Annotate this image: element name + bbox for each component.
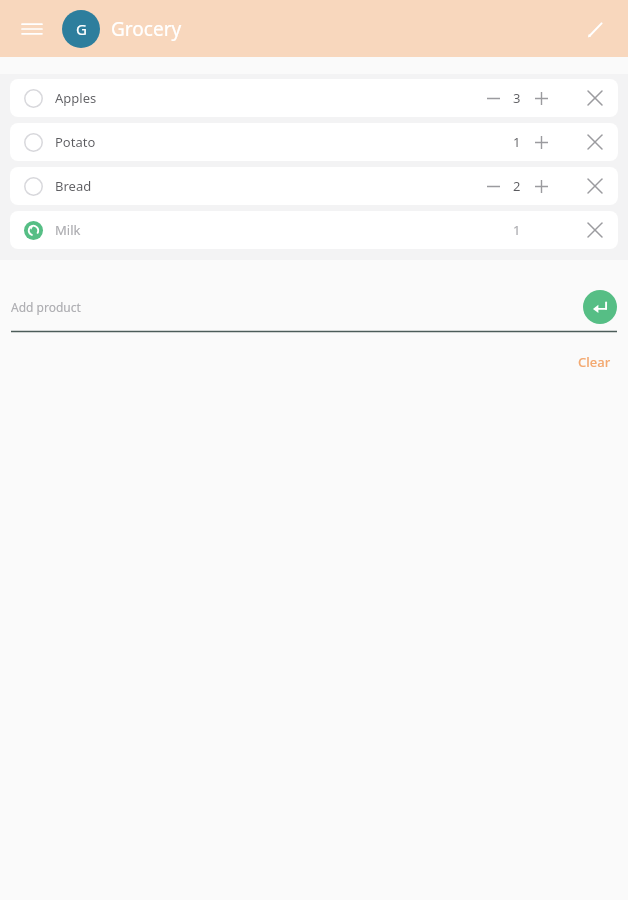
staticText: Apples (55, 89, 97, 107)
button[interactable]: Decrease Bread (480, 173, 506, 199)
button[interactable]: Menu (14, 11, 50, 47)
button[interactable]: Check Bread (10, 167, 618, 205)
button[interactable]: Increase Potato (528, 129, 554, 155)
staticText: 3 (513, 89, 521, 107)
button[interactable]: Remove Potato (580, 127, 610, 157)
button[interactable]: Add (583, 290, 617, 324)
button[interactable]: Clear (572, 349, 617, 375)
button[interactable]: Increase Apples (528, 85, 554, 111)
staticText: Milk (55, 221, 81, 239)
staticText: Add product (11, 299, 81, 315)
staticText: Grocery (111, 16, 182, 42)
button[interactable]: Decrease Apples (480, 85, 506, 111)
button[interactable]: Remove Bread (580, 171, 610, 201)
button[interactable]: Check Potato (10, 123, 618, 161)
button[interactable]: Add product (11, 284, 617, 330)
button[interactable]: Restore Milk (10, 211, 618, 249)
button[interactable]: Check Potato (21, 130, 45, 154)
staticText: 1 (513, 221, 521, 239)
button[interactable]: Remove Milk (580, 215, 610, 245)
button[interactable]: G (62, 10, 100, 48)
button[interactable]: Remove Apples (580, 83, 610, 113)
staticText: G (76, 19, 87, 39)
button[interactable]: Check Apples (10, 79, 618, 117)
staticText: Bread (55, 177, 92, 195)
button[interactable]: Edit (576, 10, 614, 48)
staticText: Clear (578, 353, 611, 371)
button[interactable]: Increase Bread (528, 173, 554, 199)
button[interactable]: Check Apples (21, 86, 45, 110)
staticText: 1 (513, 133, 521, 151)
staticText: Potato (55, 133, 96, 151)
button[interactable]: Check Bread (21, 174, 45, 198)
staticText: 2 (513, 177, 521, 195)
button[interactable]: Restore Milk (21, 218, 45, 242)
